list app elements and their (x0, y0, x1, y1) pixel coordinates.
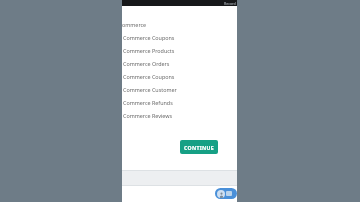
button[interactable]: Account (215, 188, 237, 199)
button[interactable]: Commerce Reviews (123, 109, 237, 122)
staticText: Commerce Customer (123, 86, 177, 93)
staticText: Commerce Orders (123, 60, 170, 67)
staticText: CONTINUE (184, 144, 215, 151)
button[interactable]: Commerce Refunds (123, 96, 237, 109)
button[interactable]: Commerce Orders (123, 57, 237, 70)
button[interactable]: Commerce Coupons (123, 70, 237, 83)
staticText: Record (224, 1, 236, 6)
staticText: Commerce Coupons (123, 34, 175, 41)
staticText: Commerce Reviews (123, 112, 173, 119)
button[interactable]: Commerce Products (123, 44, 237, 57)
staticText: Commerce Products (123, 47, 175, 54)
button[interactable]: ommerce (123, 18, 237, 31)
button[interactable]: Commerce Customer (123, 83, 237, 96)
staticText: Commerce Refunds (123, 99, 173, 106)
button[interactable]: Commerce Coupons (123, 31, 237, 44)
staticText: Commerce Coupons (123, 73, 175, 80)
button[interactable]: CONTINUE (180, 140, 218, 154)
staticText: ommerce (122, 21, 147, 28)
